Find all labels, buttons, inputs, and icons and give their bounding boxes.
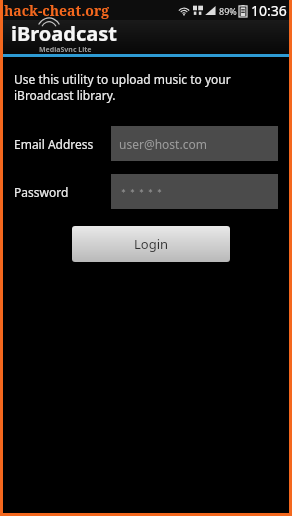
- staticText: iBroadcast: [11, 20, 117, 47]
- staticText: user@host.com: [119, 136, 207, 152]
- button[interactable]: ＊＊＊＊＊: [111, 174, 278, 209]
- staticText: 89%: [219, 5, 237, 17]
- staticText: hack-cheat.org: [4, 1, 110, 20]
- staticText: Use this utility to upload music to your…: [14, 71, 278, 103]
- staticText: MediaSync Lite: [39, 45, 92, 52]
- staticText: 10:36: [251, 1, 287, 20]
- button[interactable]: Login: [72, 226, 230, 262]
- staticText: ＊＊＊＊＊: [119, 186, 164, 197]
- staticText: Login: [134, 235, 169, 253]
- button[interactable]: user@host.com: [111, 126, 278, 161]
- staticText: Email Address: [14, 136, 94, 152]
- staticText: Password: [14, 184, 69, 200]
